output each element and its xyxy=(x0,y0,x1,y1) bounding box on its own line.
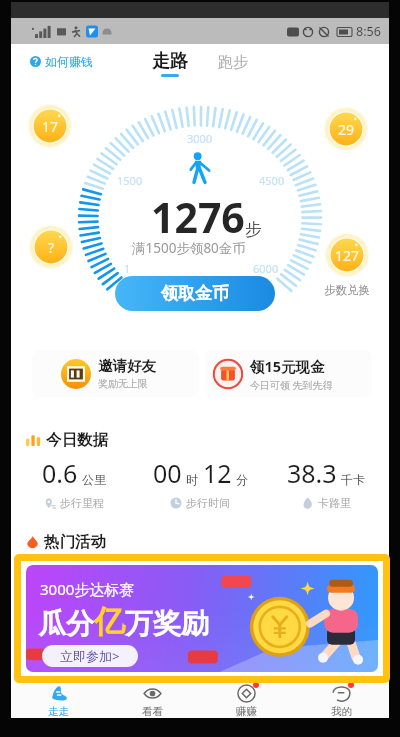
staticText: 今日数据 xyxy=(46,430,108,450)
staticText: 6000 xyxy=(253,261,279,276)
button[interactable]: 走走 xyxy=(11,683,105,718)
staticText: 1500 xyxy=(117,173,143,188)
staticText: 跑步 xyxy=(218,53,248,72)
staticText: 1276 xyxy=(151,189,245,245)
staticText: 满1500步领80金币 xyxy=(132,239,246,257)
staticText: 00 xyxy=(153,456,182,490)
button[interactable]: 127 xyxy=(325,233,369,277)
button[interactable]: 看看 xyxy=(105,683,199,718)
button[interactable]: 赚赚 xyxy=(199,683,294,718)
staticText: 看看 xyxy=(142,705,163,718)
staticText: ? xyxy=(48,238,55,257)
staticText: 亿 xyxy=(94,602,125,641)
staticText: 步数兑换 xyxy=(324,283,370,297)
button[interactable]: 领15元现金 xyxy=(205,350,372,397)
button[interactable]: 3000步达标赛 xyxy=(26,565,378,672)
staticText: 0.6 xyxy=(42,456,78,490)
staticText: 3000步达标赛 xyxy=(40,579,135,599)
staticText: 卡路里 xyxy=(318,496,351,510)
staticText: 领15元现金 xyxy=(250,356,325,376)
staticText: 步 xyxy=(245,219,262,240)
button[interactable]: 38.3 xyxy=(263,456,389,510)
staticText: 瓜分 xyxy=(38,606,94,641)
staticText: 38.3 xyxy=(287,456,337,490)
button[interactable]: 走路 xyxy=(150,50,190,77)
staticText: 万奖励 xyxy=(125,606,209,641)
button[interactable]: ? xyxy=(29,225,73,269)
button[interactable]: 0.6 xyxy=(11,456,137,510)
button[interactable]: 如何赚钱 xyxy=(24,50,99,73)
button[interactable]: 我的 xyxy=(294,683,389,718)
staticText: 步行时间 xyxy=(186,496,230,510)
staticText: 如何赚钱 xyxy=(45,54,93,69)
staticText: 立即参加> xyxy=(60,647,120,665)
staticText: 我的 xyxy=(331,705,352,718)
button[interactable]: 跑步 xyxy=(215,51,251,74)
staticText: 127 xyxy=(335,246,360,265)
staticText: 12 xyxy=(203,456,232,490)
staticText: 公里 xyxy=(82,472,106,487)
button[interactable]: 00 xyxy=(137,456,263,510)
staticText: 邀请好友 xyxy=(98,357,156,375)
staticText: 8:56 xyxy=(356,23,381,40)
staticText: 千卡 xyxy=(341,472,365,487)
staticText: 4500 xyxy=(259,173,285,188)
staticText: 奖励无上限 xyxy=(98,377,148,390)
button[interactable]: 领取金币 xyxy=(115,276,275,311)
button[interactable]: 邀请好友 xyxy=(32,350,199,397)
staticText: 走走 xyxy=(48,705,69,718)
button[interactable]: 立即参加> xyxy=(42,645,138,667)
button[interactable]: 29 xyxy=(324,107,368,151)
staticText: 赚赚 xyxy=(236,705,257,718)
staticText: 今日可领 先到先得 xyxy=(250,378,333,392)
staticText: 29 xyxy=(338,120,355,139)
staticText: 步行里程 xyxy=(60,496,104,510)
staticText: 1 xyxy=(124,261,131,276)
staticText: 走路 xyxy=(152,50,188,73)
staticText: 时 xyxy=(186,472,198,487)
staticText: 17 xyxy=(42,117,59,136)
staticText: 分 xyxy=(236,472,248,487)
staticText: 领取金币 xyxy=(161,283,229,304)
staticText: 热门活动 xyxy=(44,532,106,552)
button[interactable]: 17 xyxy=(28,104,72,148)
staticText: 3000 xyxy=(187,131,213,146)
